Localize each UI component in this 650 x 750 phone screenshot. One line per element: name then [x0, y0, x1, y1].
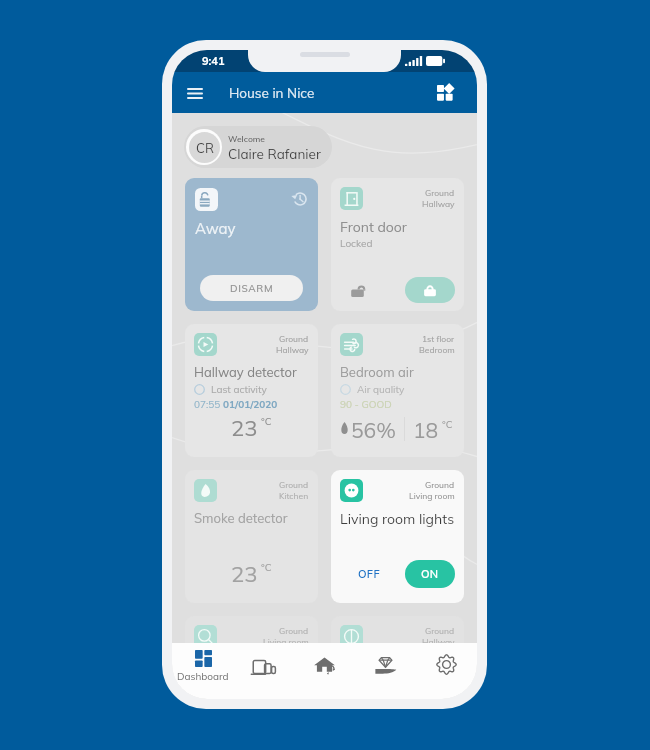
- staticText: 23: [231, 560, 258, 588]
- staticText: Living room lights: [340, 510, 455, 528]
- staticText: Hallway: [422, 636, 455, 643]
- staticText: Ground: [425, 479, 455, 490]
- button[interactable]: Away: [185, 178, 318, 311]
- button[interactable]: Devices: [233, 643, 294, 699]
- button[interactable]: Unlock: [346, 279, 368, 301]
- button[interactable]: Customize dashboard: [429, 77, 461, 109]
- staticText: °C: [442, 418, 453, 431]
- staticText: Ground: [279, 333, 309, 344]
- staticText: 07:55: [194, 398, 223, 411]
- staticText: 01/01/2020: [223, 398, 278, 411]
- staticText: Hallway detector: [194, 364, 297, 380]
- staticText: Welcome: [228, 133, 266, 144]
- staticText: House in Nice: [229, 84, 315, 101]
- staticText: 18: [413, 417, 439, 443]
- staticText: Living room: [409, 490, 455, 501]
- button[interactable]: Ground: [331, 178, 464, 311]
- button[interactable]: Services: [355, 643, 416, 699]
- staticText: Kitchen: [279, 490, 309, 501]
- button[interactable]: Dashboard: [172, 643, 233, 699]
- staticText: Living room: [263, 636, 309, 643]
- staticText: 90 - GOOD: [340, 398, 392, 411]
- button[interactable]: CR: [184, 126, 332, 168]
- staticText: 23: [231, 414, 258, 442]
- button[interactable]: Ground: [331, 470, 464, 603]
- staticText: Bedroom air: [340, 364, 414, 380]
- staticText: CR: [196, 140, 214, 156]
- staticText: Ground: [425, 187, 455, 198]
- staticText: Locked: [340, 237, 373, 250]
- button[interactable]: 1st floor: [331, 324, 464, 457]
- button[interactable]: Ground: [185, 470, 318, 603]
- staticText: Away: [195, 219, 236, 238]
- staticText: Front door: [340, 218, 407, 236]
- staticText: DISARM: [230, 282, 274, 295]
- staticText: OFF: [358, 567, 380, 581]
- button[interactable]: OFF: [350, 561, 388, 587]
- button[interactable]: Lock: [405, 277, 455, 303]
- staticText: Claire Rafanier: [228, 145, 321, 162]
- staticText: 1st floor: [422, 333, 455, 344]
- staticText: Dashboard: [177, 670, 229, 683]
- button[interactable]: DISARM: [200, 275, 303, 301]
- staticText: °C: [261, 561, 272, 574]
- staticText: Hallway: [422, 198, 455, 209]
- staticText: Air quality: [357, 383, 405, 396]
- button[interactable]: Ground: [185, 324, 318, 457]
- button[interactable]: Ground: [331, 616, 464, 643]
- staticText: Ground: [425, 625, 455, 636]
- staticText: Bedroom: [419, 344, 455, 355]
- staticText: Ground: [279, 625, 309, 636]
- button[interactable]: Open navigation menu: [178, 76, 212, 110]
- button[interactable]: Settings: [416, 643, 477, 699]
- staticText: Smoke detector: [194, 510, 288, 526]
- staticText: 56%: [351, 417, 396, 443]
- staticText: °C: [261, 415, 272, 428]
- button[interactable]: Home: [294, 643, 355, 699]
- staticText: Ground: [279, 479, 309, 490]
- staticText: Hallway: [276, 344, 309, 355]
- button[interactable]: Ground: [185, 616, 318, 643]
- staticText: Last activity: [211, 383, 267, 396]
- staticText: 9:41: [202, 54, 225, 68]
- button[interactable]: ON: [405, 560, 455, 588]
- staticText: ON: [421, 567, 439, 581]
